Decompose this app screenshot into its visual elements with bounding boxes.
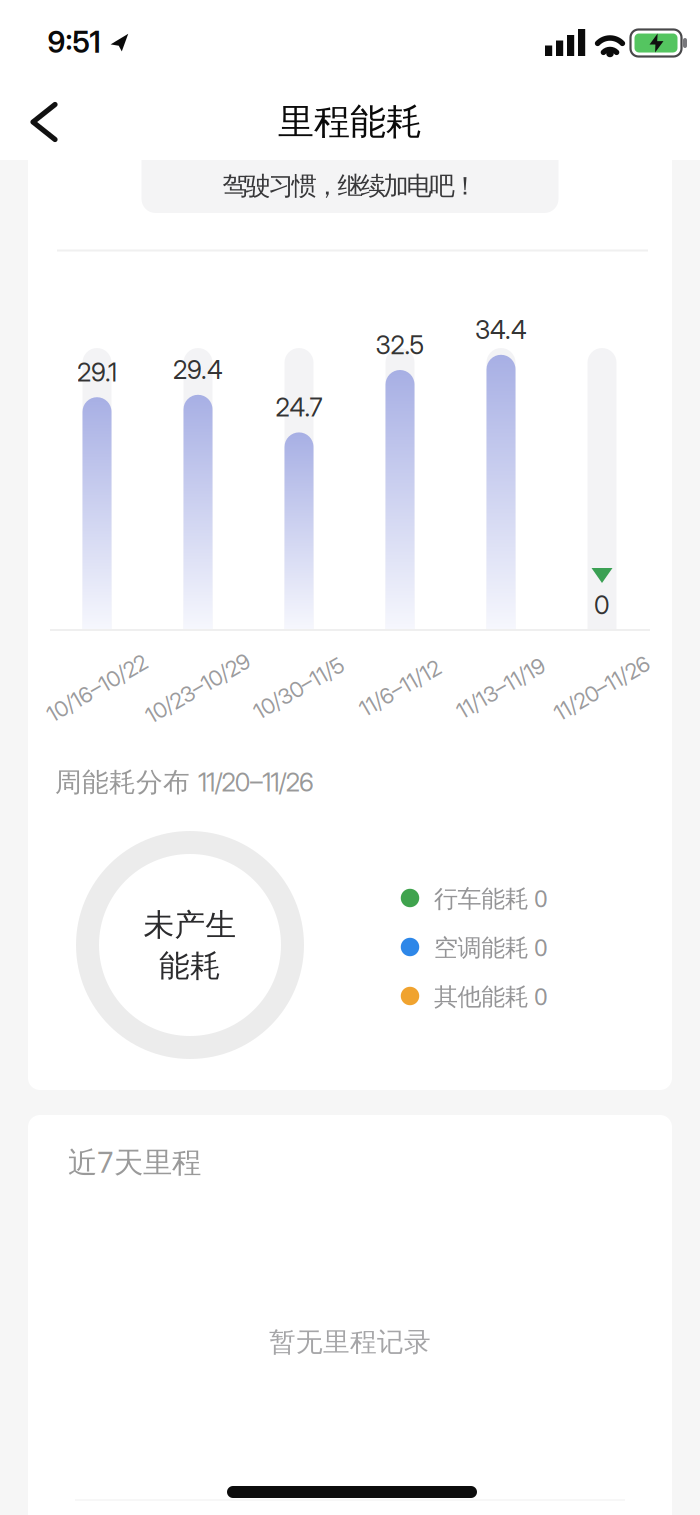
- staticText: 周能耗分布: [55, 766, 190, 799]
- staticText: 11/20–11/26: [548, 675, 655, 701]
- button[interactable]: Back: [21, 96, 67, 147]
- staticText: 29.4: [173, 354, 223, 385]
- staticText: 其他能耗 0: [434, 980, 548, 1012]
- staticText: 29.1: [77, 357, 117, 388]
- staticText: 11/20–11/26: [198, 767, 314, 798]
- staticText: 未产生: [143, 906, 236, 944]
- staticText: 32.5: [375, 330, 424, 360]
- staticText: 11/6–11/12: [355, 675, 445, 701]
- staticText: 0: [594, 590, 610, 620]
- staticText: 10/16–10/22: [41, 675, 153, 701]
- staticText: 行车能耗 0: [434, 882, 548, 914]
- staticText: 34.4: [475, 314, 527, 345]
- staticText: 9:51: [47, 24, 100, 60]
- staticText: 10/23–10/29: [139, 675, 256, 701]
- staticText: 24.7: [275, 392, 322, 423]
- staticText: 10/30–11/5: [248, 675, 349, 701]
- staticText: 里程能耗: [278, 100, 422, 144]
- staticText: 空调能耗 0: [434, 931, 548, 963]
- staticText: 11/13–11/19: [451, 675, 550, 701]
- staticText: 驾驶习惯，继续加电吧！: [222, 170, 477, 201]
- staticText: 近7天里程: [68, 1142, 201, 1181]
- staticText: 暂无里程记录: [269, 1326, 431, 1358]
- staticText: 能耗: [159, 947, 221, 985]
